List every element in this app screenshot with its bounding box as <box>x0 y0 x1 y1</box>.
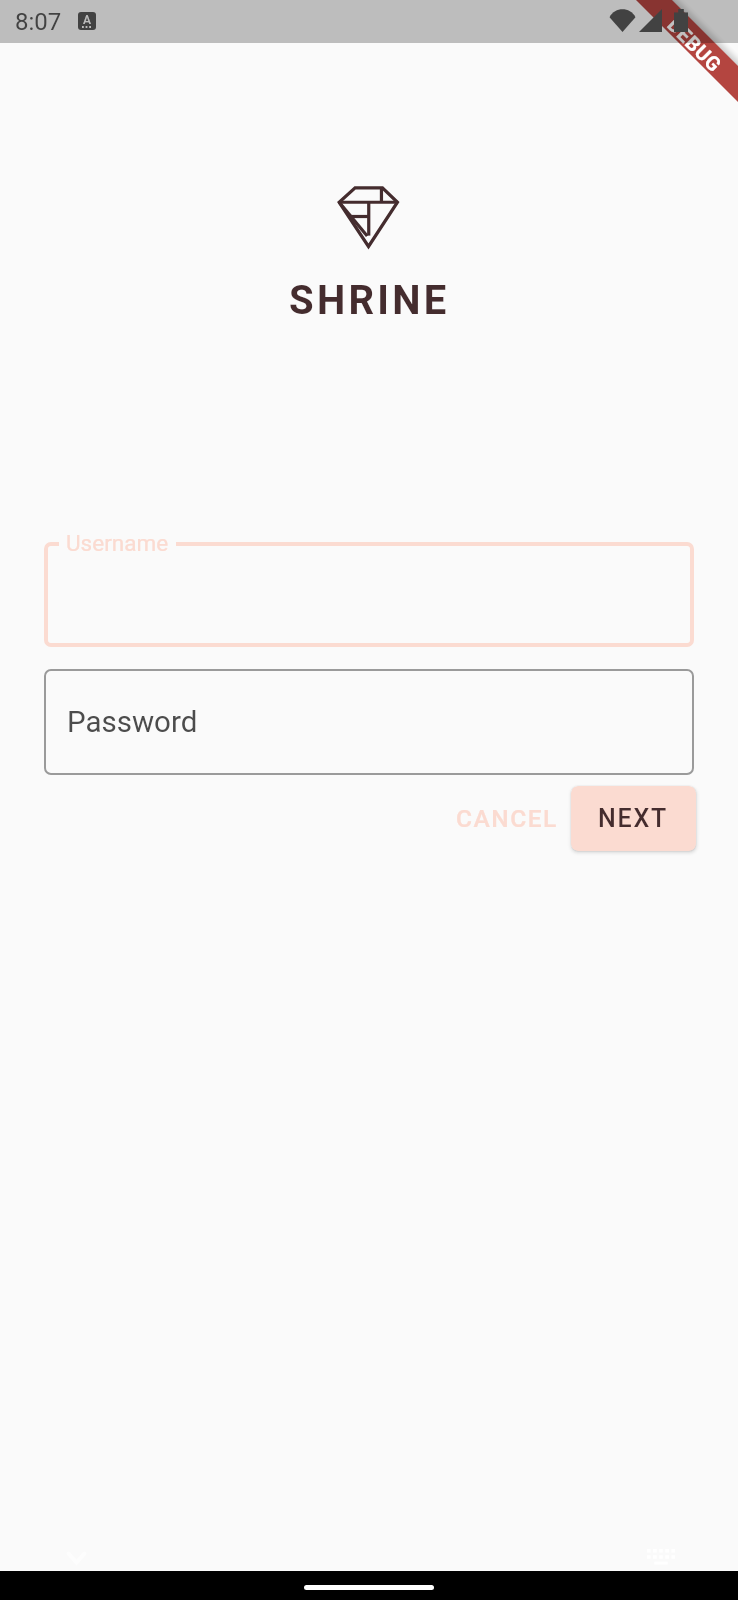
button[interactable]: CANCEL <box>441 786 573 851</box>
staticText: SHRINE <box>289 277 450 324</box>
button[interactable]: Switch keyboard <box>635 1535 691 1579</box>
button[interactable]: Hide keyboard <box>49 1535 105 1579</box>
button[interactable] <box>44 669 694 775</box>
staticText: 8:07 <box>15 8 62 36</box>
staticText: Password <box>67 705 198 740</box>
staticText: Username <box>66 530 169 556</box>
staticText: NEXT <box>598 804 669 833</box>
staticText: A <box>83 13 91 27</box>
button[interactable]: NEXT <box>571 786 696 851</box>
button[interactable] <box>44 542 694 647</box>
staticText: CANCEL <box>456 804 558 833</box>
staticText: DEBUG <box>663 13 727 76</box>
